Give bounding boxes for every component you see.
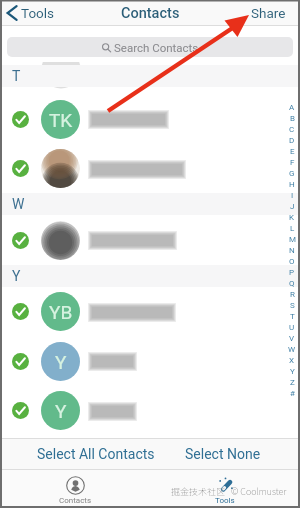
staticText: Q: [289, 279, 295, 288]
button[interactable]: [0, 144, 300, 193]
button[interactable]: Y: [0, 386, 300, 435]
staticText: T: [290, 312, 295, 321]
staticText: R: [290, 290, 295, 299]
staticText: W: [288, 345, 296, 354]
staticText: Select None: [185, 446, 261, 462]
staticText: 掘金技术社区: [171, 485, 226, 498]
staticText: F: [290, 158, 295, 167]
staticText: Contacts: [121, 5, 180, 22]
staticText: N: [289, 246, 295, 255]
button[interactable]: Search Contacts: [7, 37, 293, 57]
button[interactable]: [0, 215, 300, 265]
staticText: O: [289, 257, 295, 266]
button[interactable]: Tools: [4, 3, 58, 23]
button[interactable]: Tools tab: [150, 470, 300, 508]
staticText: S: [290, 301, 295, 310]
staticText: YB: [49, 301, 73, 323]
staticText: © Coolmuster: [231, 485, 287, 498]
staticText: U: [289, 323, 295, 332]
button[interactable]: Select All Contacts: [0, 438, 171, 470]
staticText: Contacts: [59, 496, 92, 505]
staticText: L: [290, 224, 295, 233]
staticText: K: [289, 213, 295, 222]
button[interactable]: YB: [0, 287, 300, 336]
staticText: Tools: [215, 496, 235, 505]
staticText: G: [289, 169, 295, 178]
button[interactable]: Contacts tab: [0, 470, 150, 508]
staticText: A: [289, 103, 295, 112]
staticText: Y: [290, 367, 295, 376]
staticText: P: [289, 268, 295, 277]
staticText: B: [290, 114, 295, 123]
staticText: X: [289, 356, 295, 365]
staticText: C: [289, 125, 295, 134]
staticText: E: [290, 147, 295, 156]
staticText: Tools: [21, 5, 55, 21]
button[interactable]: Y: [0, 336, 300, 386]
staticText: J: [290, 202, 295, 211]
staticText: Y: [55, 351, 67, 373]
staticText: #: [290, 389, 295, 398]
staticText: Search Contacts: [114, 41, 199, 54]
staticText: Y: [55, 400, 67, 422]
staticText: D: [289, 136, 295, 145]
staticText: Select All Contacts: [37, 446, 155, 462]
staticText: W: [12, 196, 25, 212]
button[interactable]: Select None: [171, 438, 281, 470]
staticText: TK: [49, 109, 73, 131]
staticText: H: [289, 180, 295, 189]
button[interactable]: Share: [240, 2, 300, 24]
staticText: T: [12, 68, 21, 84]
button[interactable]: TK: [0, 94, 300, 144]
staticText: V: [289, 334, 295, 343]
staticText: I: [291, 191, 294, 200]
staticText: Share: [251, 5, 286, 21]
staticText: M: [289, 235, 296, 244]
staticText: Y: [12, 268, 21, 284]
staticText: Z: [290, 378, 295, 387]
